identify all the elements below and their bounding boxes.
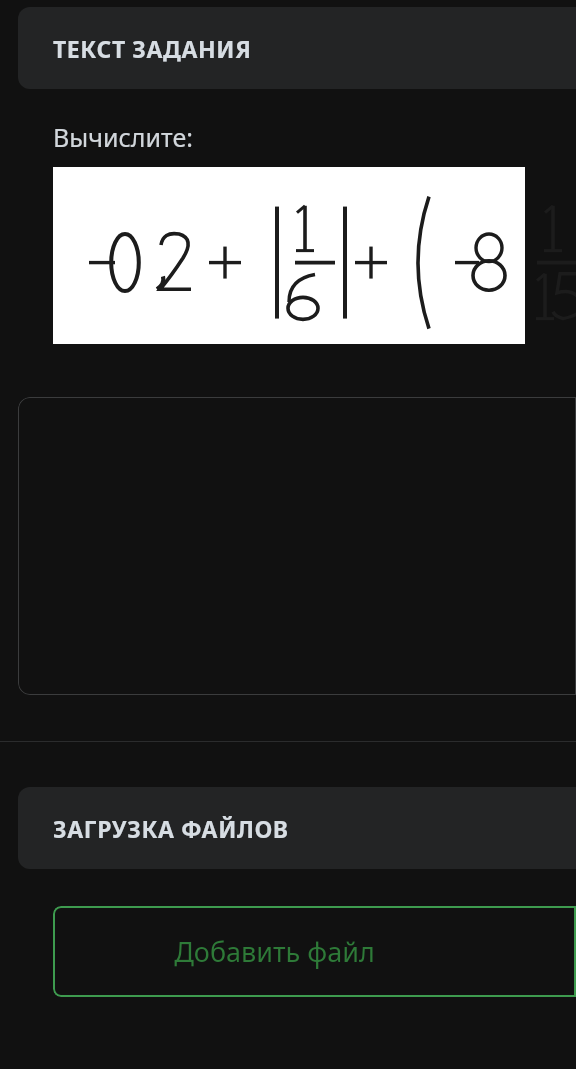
button[interactable]: Добавить файл [53,906,576,997]
button[interactable]: ТЕКСТ ЗАДАНИЯ [18,7,576,89]
staticText: ЗАГРУЗКА ФАЙЛОВ [53,813,289,844]
staticText: Добавить файл [174,933,375,970]
staticText: ТЕКСТ ЗАДАНИЯ [53,33,252,64]
button[interactable] [18,397,576,695]
button[interactable]: ЗАГРУЗКА ФАЙЛОВ [18,787,576,869]
staticText: Вычислите: [53,120,193,154]
